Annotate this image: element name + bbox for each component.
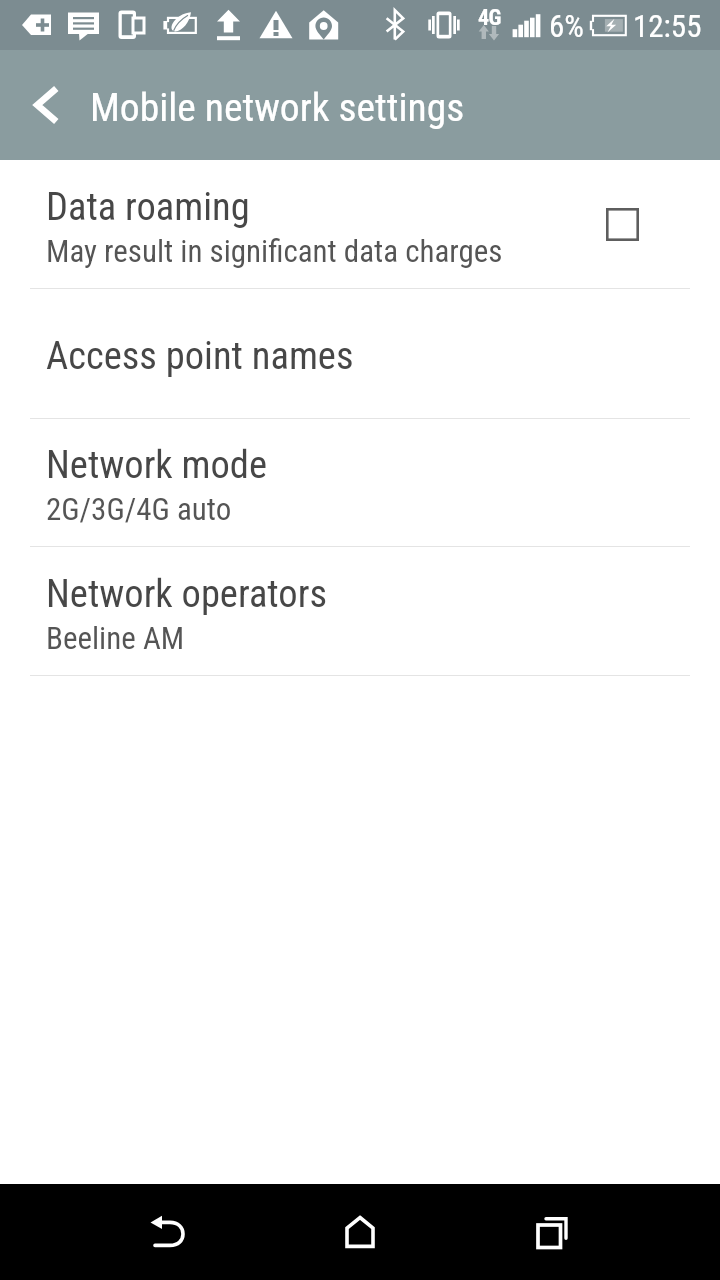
staticText: 4G <box>478 5 501 31</box>
staticText: 6% <box>549 8 584 44</box>
staticText: Network mode <box>46 442 268 487</box>
staticText: Access point names <box>46 333 354 378</box>
button[interactable]: Network mode <box>0 419 720 546</box>
staticText: 2G/3G/4G auto <box>46 491 232 527</box>
button[interactable]: Recent apps <box>501 1184 597 1280</box>
staticText: Mobile network settings <box>90 84 465 130</box>
staticText: Network operators <box>46 571 327 616</box>
button[interactable]: Data roaming checkbox <box>606 208 639 241</box>
button[interactable]: Network operators <box>0 547 720 675</box>
staticText: 12:55 <box>633 8 702 44</box>
button[interactable]: Data roaming <box>0 160 720 288</box>
staticText: May result in significant data charges <box>46 233 503 269</box>
staticText: Data roaming <box>46 184 250 229</box>
button[interactable]: Home <box>312 1184 408 1280</box>
button[interactable]: Back <box>119 1184 215 1280</box>
staticText: Beeline AM <box>46 620 185 656</box>
button[interactable]: Navigate up <box>0 63 84 147</box>
button[interactable]: Access point names <box>0 289 720 418</box>
